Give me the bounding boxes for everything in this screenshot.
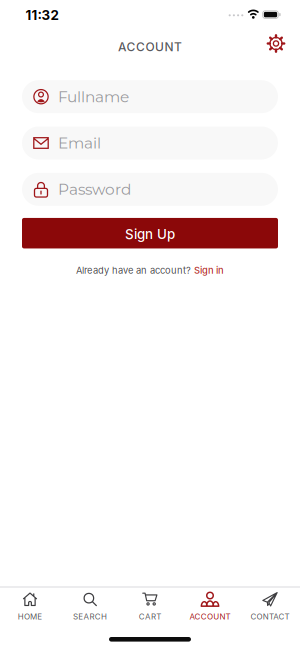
staticText: CONTACT — [250, 612, 290, 621]
staticText: SEARCH — [73, 612, 107, 621]
staticText: ACCOUNT — [118, 40, 182, 54]
staticText: CART — [139, 612, 161, 621]
staticText: Password — [58, 180, 131, 199]
staticText: Sign Up — [125, 226, 175, 242]
staticText: Email — [58, 134, 101, 152]
staticText: Already have an account? — [76, 265, 191, 276]
staticText: HOME — [18, 612, 42, 621]
staticText: ACCOUNT — [189, 612, 231, 621]
staticText: Sign in — [194, 265, 224, 276]
staticText: 11:32 — [25, 7, 58, 23]
staticText: Fullname — [58, 87, 129, 106]
